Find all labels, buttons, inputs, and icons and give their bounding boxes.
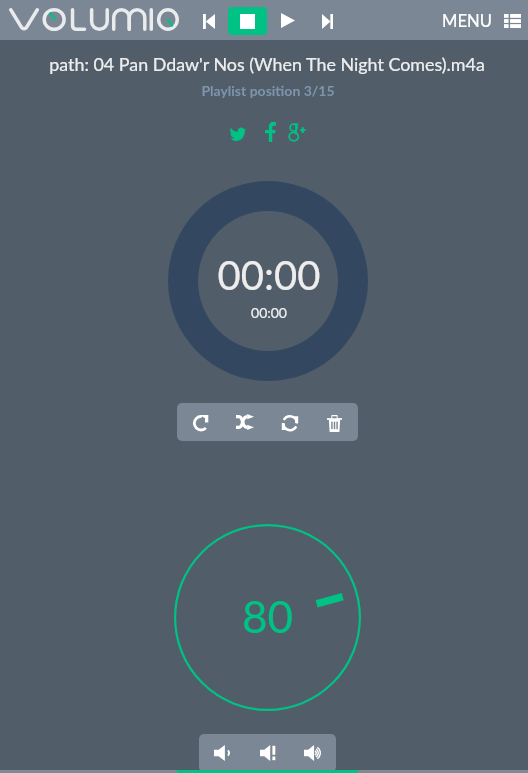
staticText: Playlist position 3/15 (4, 82, 528, 99)
staticText: 00:00 (169, 304, 369, 321)
button[interactable]: Play (274, 5, 301, 36)
button[interactable]: Repeat (269, 403, 311, 441)
staticText: 80 (242, 590, 294, 643)
staticText: path: 04 Pan Ddaw'r Nos (When The Night … (3, 53, 528, 74)
button[interactable]: Volume up (291, 734, 335, 772)
button[interactable]: Repeat one (180, 403, 222, 441)
button[interactable]: Clear playlist (313, 403, 355, 441)
button[interactable]: Seek position (168, 181, 368, 381)
staticText: 00:00 (169, 251, 369, 299)
staticText: MENU (442, 11, 492, 31)
button[interactable]: Previous (196, 6, 222, 36)
button[interactable]: Share on Google Plus (286, 120, 308, 143)
button[interactable]: Shuffle (224, 403, 266, 441)
button[interactable]: Mute (246, 734, 290, 772)
button[interactable]: Volume level 80 (174, 524, 361, 711)
button[interactable]: Next (314, 6, 340, 36)
button[interactable]: MENU (442, 6, 521, 36)
button[interactable]: Share on Facebook (262, 121, 279, 143)
button[interactable]: Volume down (200, 734, 244, 772)
button[interactable]: Share on Twitter (227, 124, 250, 144)
button[interactable]: Stop (228, 7, 267, 35)
